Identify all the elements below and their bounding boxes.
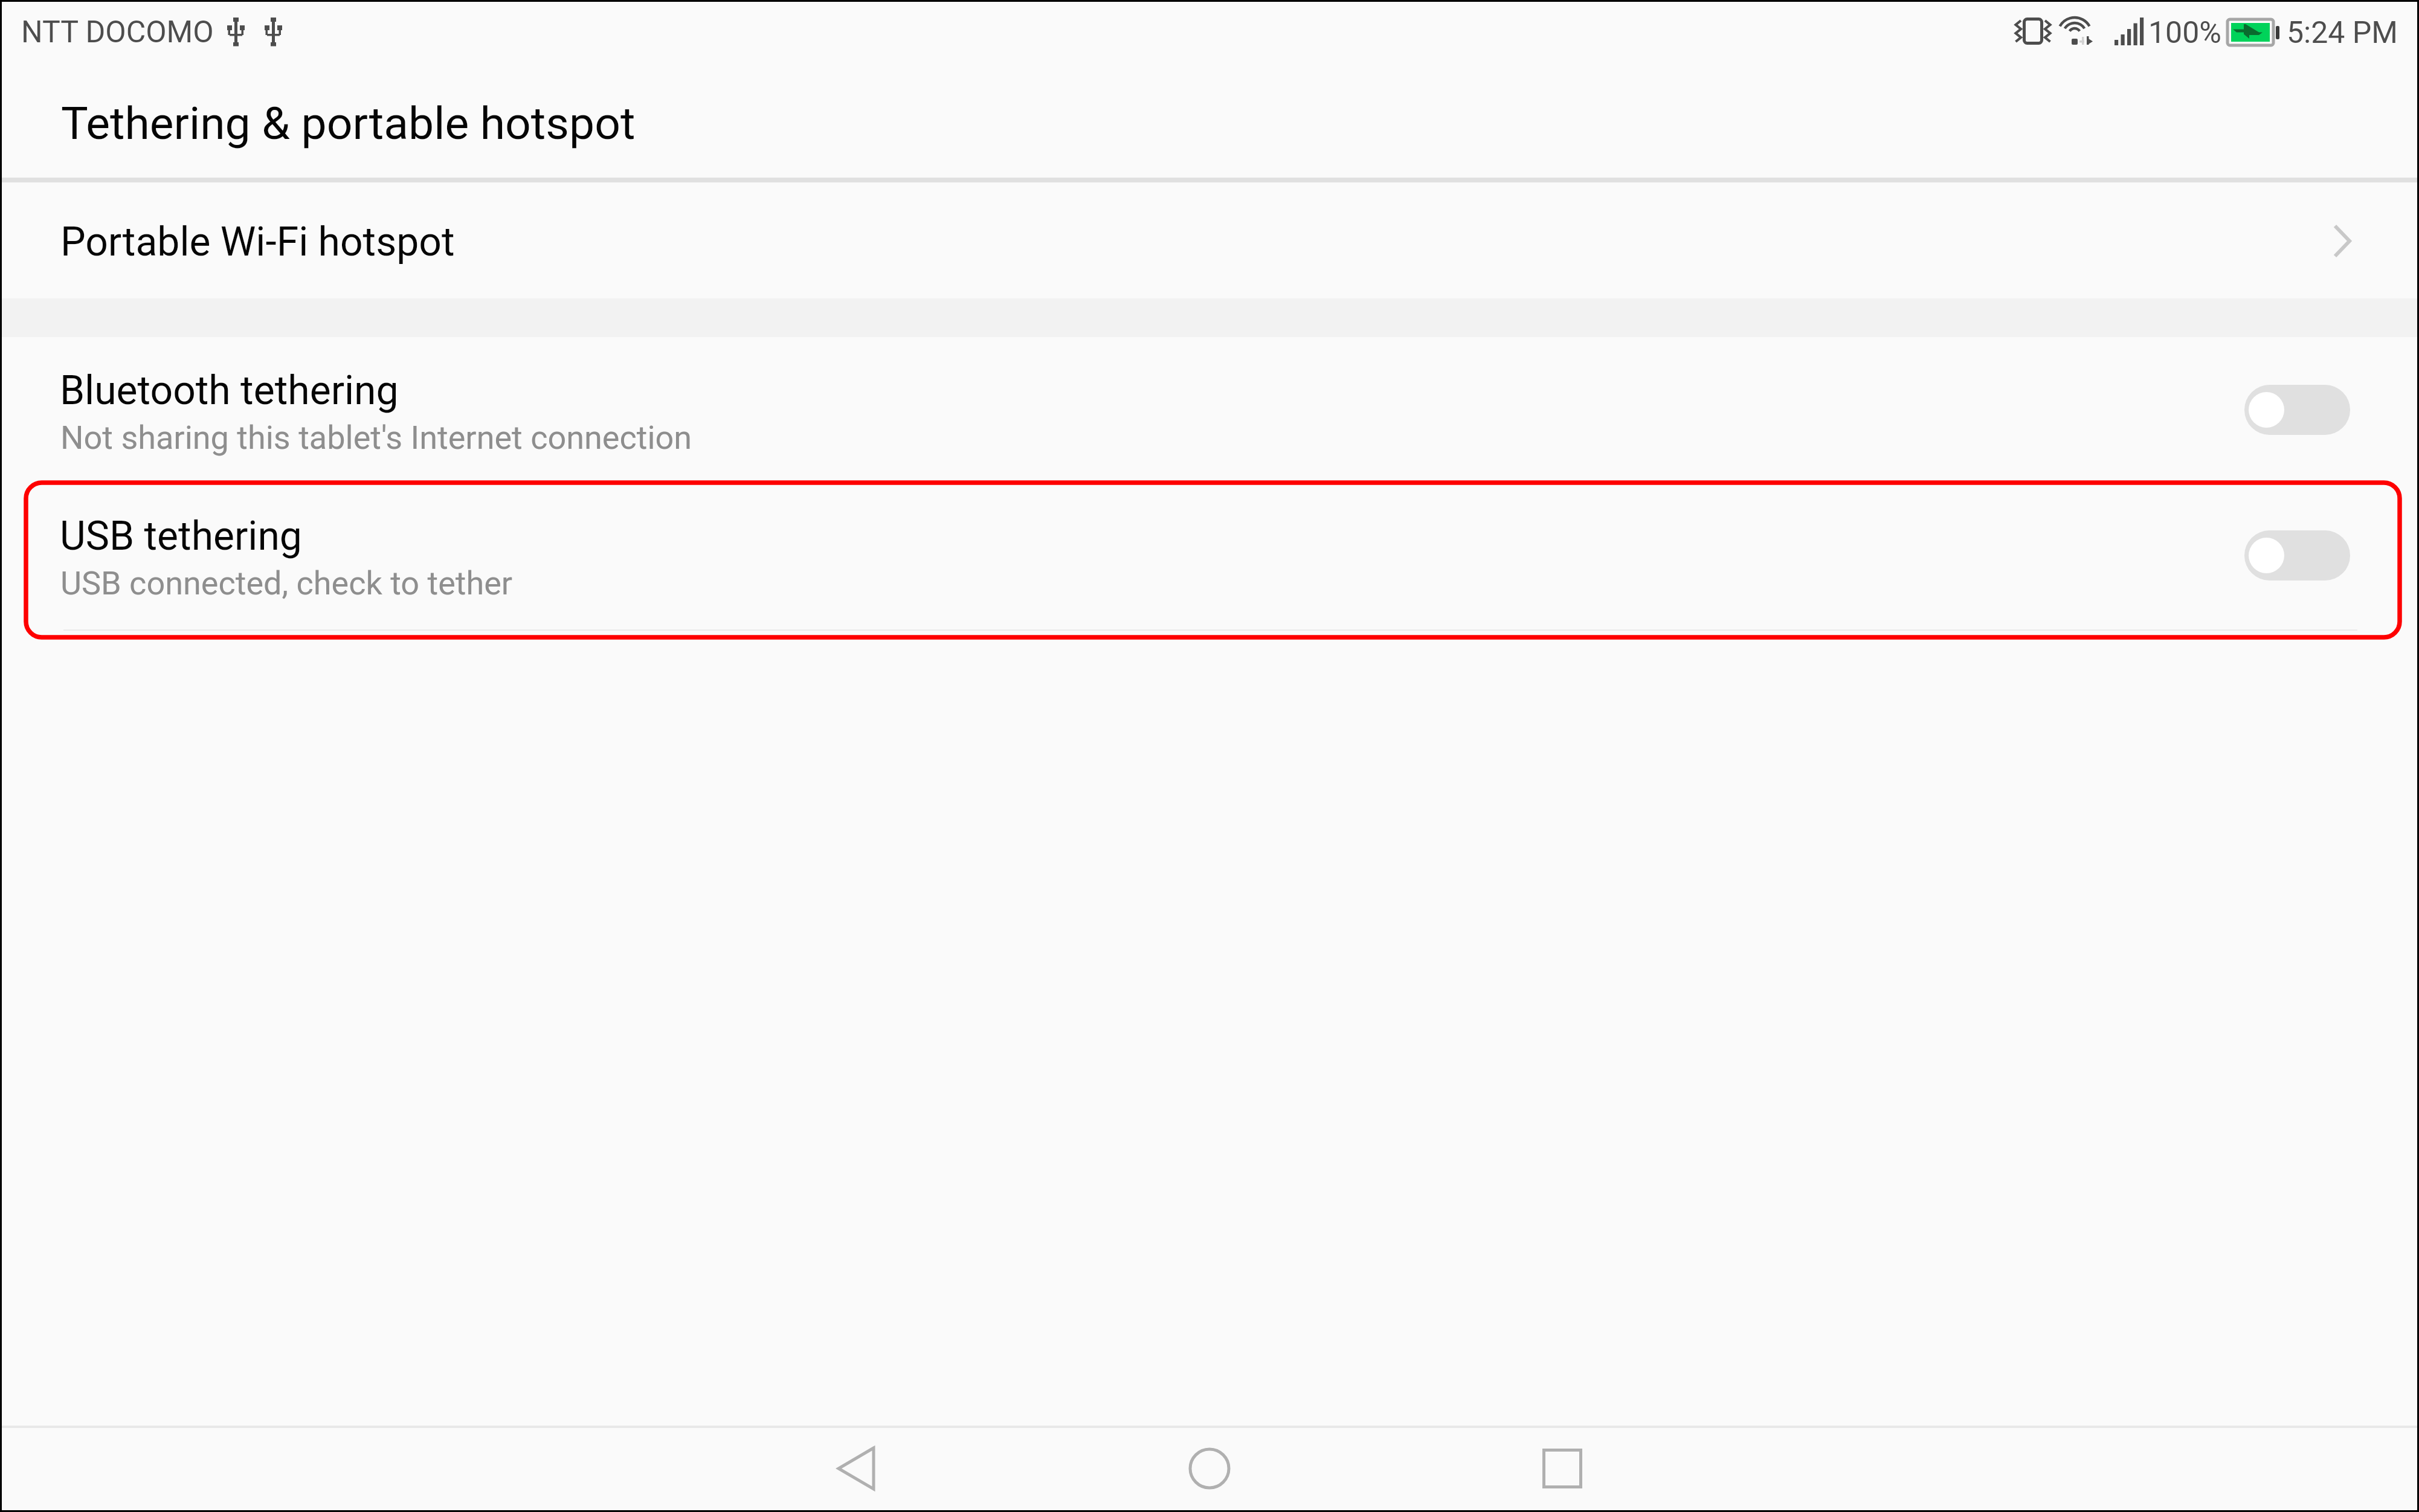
staticText: Bluetooth tethering [60,367,399,414]
staticText: USB connected, check to tether [60,564,513,602]
staticText: 5:24 PM [2287,15,2398,51]
button[interactable]: Portable Wi-Fi hotspot [0,182,2419,298]
button[interactable]: Toggle Bluetooth tethering [2244,385,2350,435]
staticText: 100% [2148,15,2221,51]
staticText: Not sharing this tablet's Internet conne… [60,419,692,457]
staticText: Tethering & portable hotspot [61,97,636,150]
button[interactable]: Recents [1514,1420,1611,1512]
button[interactable]: Bluetooth tethering [0,337,2419,483]
button[interactable]: Back [808,1420,904,1512]
staticText: USB tethering [60,513,302,559]
button[interactable]: Toggle USB tethering [2244,530,2350,581]
staticText: Portable Wi-Fi hotspot [60,219,455,265]
button[interactable]: Home [1161,1420,1258,1512]
button[interactable]: USB tethering [0,483,2419,628]
staticText: NTT DOCOMO [21,14,214,50]
